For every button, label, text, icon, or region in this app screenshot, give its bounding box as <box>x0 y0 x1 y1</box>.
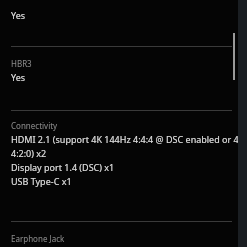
staticText: HBR3 <box>11 58 32 69</box>
staticText: Connectivity <box>11 120 58 131</box>
staticText: Display port 1.4 (DSC) x1 <box>11 161 115 173</box>
button[interactable]: Earphone Jack <box>0 222 247 247</box>
staticText: HDMI 2.1 (support 4K 144Hz 4:4:4 @ DSC e… <box>11 133 247 145</box>
button[interactable]: Connectivity <box>0 111 247 221</box>
staticText: Yes <box>11 71 26 83</box>
staticText: Yes <box>11 9 26 21</box>
button[interactable]: Packet rate <box>0 0 247 46</box>
button[interactable]: HBR3 <box>0 47 247 110</box>
staticText: 4:2:0) x2 <box>11 147 47 159</box>
staticText: USB Type-C x1 <box>11 175 72 187</box>
staticText: Earphone Jack <box>11 233 65 244</box>
